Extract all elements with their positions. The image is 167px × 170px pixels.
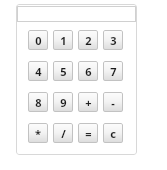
button[interactable]: 4	[28, 61, 48, 81]
staticText: 5	[60, 64, 67, 79]
button[interactable]: 0	[28, 30, 48, 50]
button[interactable]: 1	[53, 30, 73, 50]
staticText: c	[110, 126, 116, 141]
button[interactable]: 9	[53, 92, 73, 112]
button[interactable]: 8	[28, 92, 48, 112]
staticText: 4	[35, 64, 42, 79]
staticText: 2	[85, 33, 92, 48]
button[interactable]: -	[103, 92, 123, 112]
staticText: 7	[110, 64, 117, 79]
button[interactable]: 3	[103, 30, 123, 50]
staticText: /	[61, 126, 66, 141]
staticText: 1	[60, 33, 67, 48]
staticText: -	[111, 95, 115, 110]
button[interactable]: +	[78, 92, 98, 112]
button[interactable]: *	[28, 123, 48, 143]
button[interactable]: =	[78, 123, 98, 143]
staticText: 0	[35, 33, 42, 48]
button[interactable]: 7	[103, 61, 123, 81]
button[interactable]: 2	[78, 30, 98, 50]
staticText: *	[35, 126, 41, 141]
staticText: 9	[60, 95, 67, 110]
button[interactable]: 6	[78, 61, 98, 81]
staticText: =	[85, 126, 92, 141]
button[interactable]: 5	[53, 61, 73, 81]
button[interactable]: /	[53, 123, 73, 143]
staticText: 8	[35, 95, 42, 110]
button[interactable]: Display	[17, 6, 136, 22]
staticText: 3	[110, 33, 117, 48]
button[interactable]: c	[103, 123, 123, 143]
staticText: 6	[85, 64, 92, 79]
staticText: +	[85, 95, 92, 110]
